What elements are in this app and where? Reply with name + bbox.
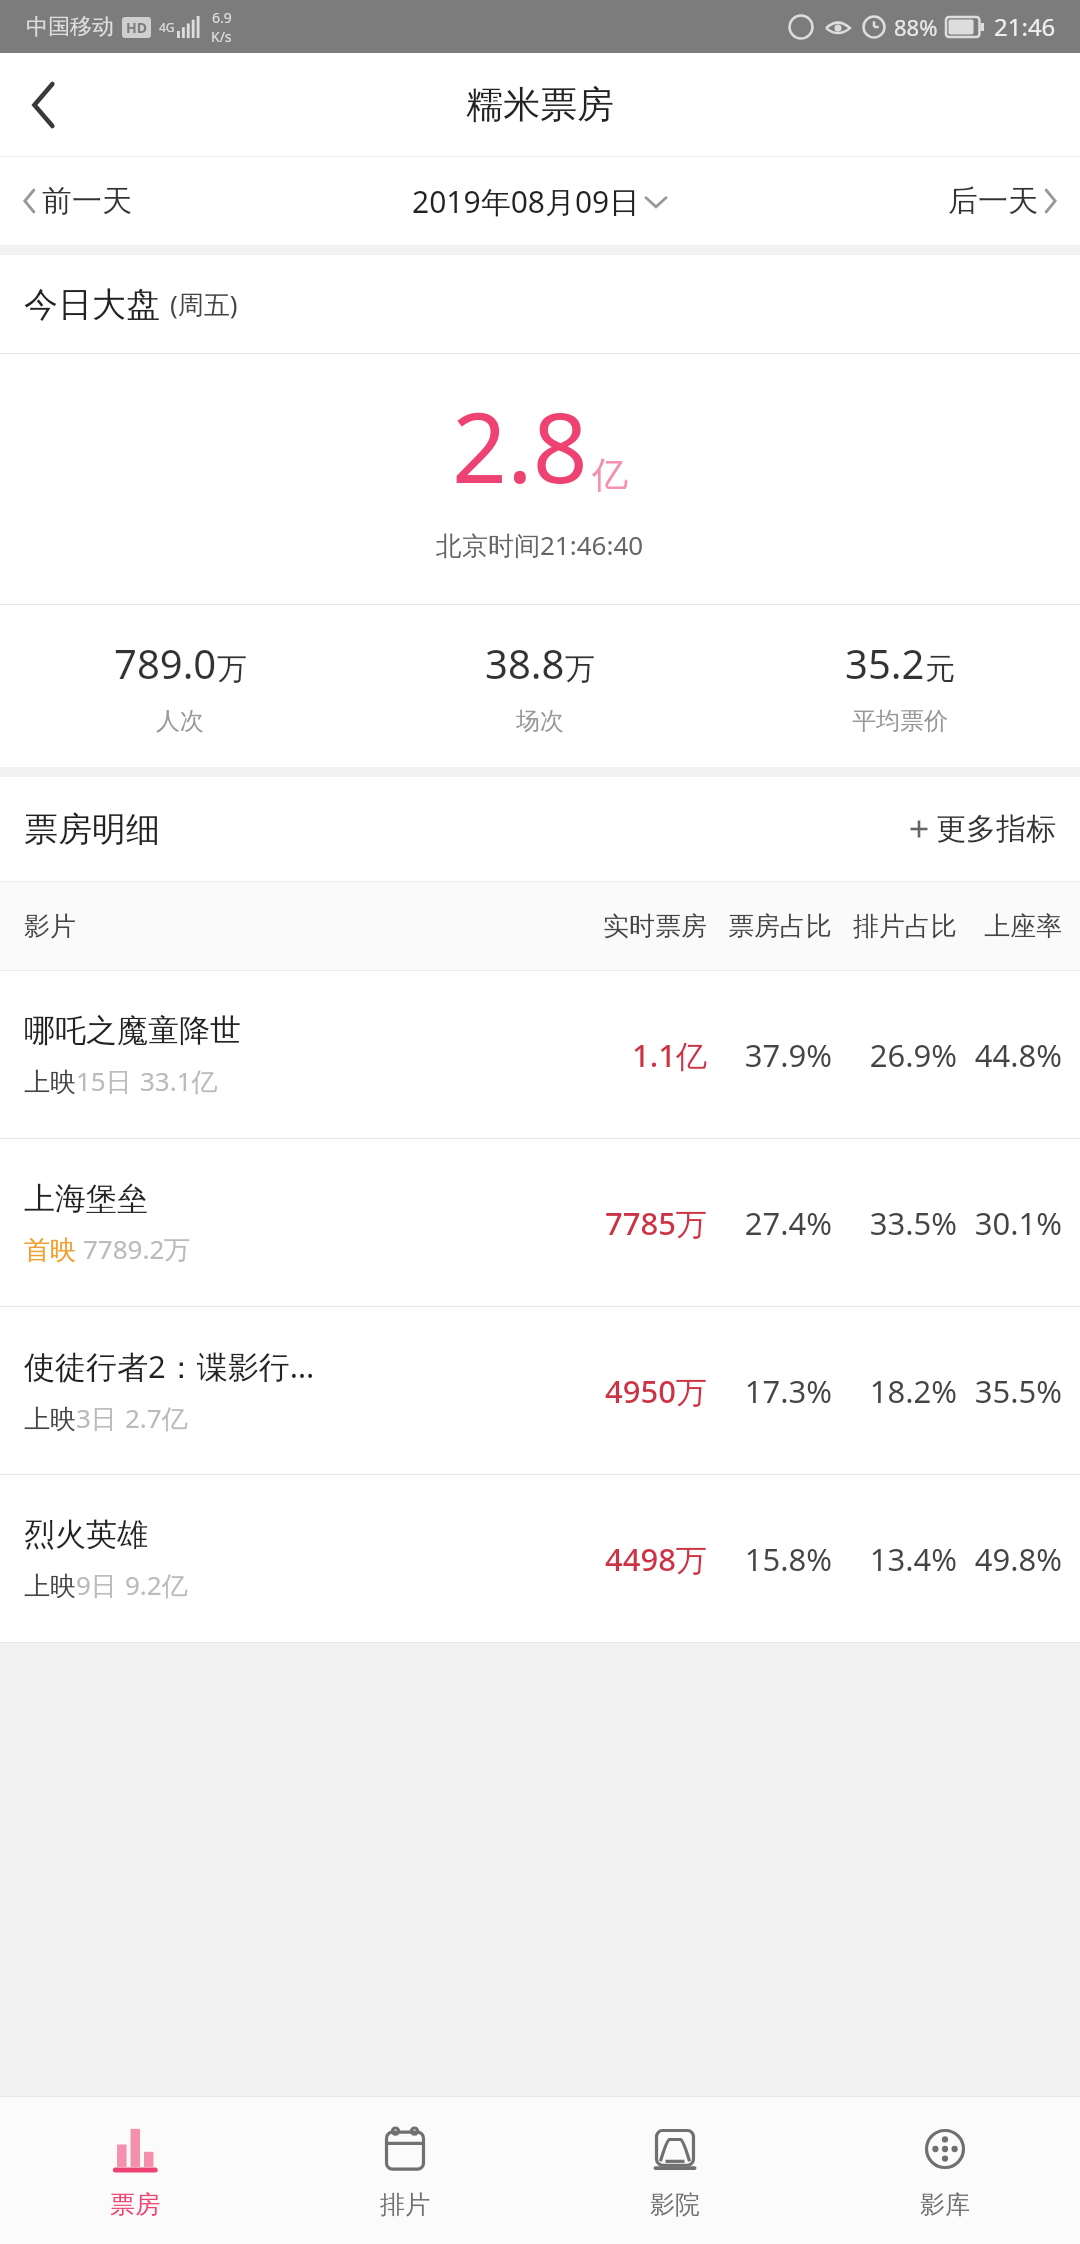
staticText: 27.4%: [707, 1202, 832, 1244]
staticText: 上海堡垒: [24, 1179, 148, 1218]
button[interactable]: 使徒行者2：谍影行…: [0, 1307, 1080, 1474]
staticText: 9日: [76, 1567, 117, 1603]
staticText: 平均票价: [852, 706, 948, 736]
staticText: 21:46: [994, 10, 1056, 43]
staticText: 影库: [920, 2189, 970, 2220]
staticText: 4950万: [557, 1370, 707, 1412]
staticText: 票房明细: [24, 808, 160, 851]
button[interactable]: 影库: [810, 2097, 1080, 2244]
staticText: 789.0: [114, 636, 217, 690]
staticText: 49.8%: [957, 1538, 1062, 1580]
staticText: 烈火英雄: [24, 1515, 148, 1554]
staticText: 元: [925, 650, 955, 688]
staticText: 9.2亿: [125, 1567, 188, 1603]
staticText: 2019年08月09日: [412, 181, 640, 222]
button[interactable]: 哪吒之魔童降世: [0, 971, 1080, 1138]
button[interactable]: 返回: [0, 61, 88, 149]
staticText: 6.9: [212, 8, 232, 27]
staticText: 7789.2万: [83, 1231, 191, 1267]
staticText: K/s: [211, 27, 232, 46]
button[interactable]: 789.0: [0, 605, 360, 767]
staticText: 排片占比: [832, 910, 957, 943]
button[interactable]: 2019年08月09日: [412, 181, 667, 222]
staticText: 26.9%: [832, 1034, 957, 1076]
staticText: 中国移动: [26, 13, 114, 41]
button[interactable]: 更多指标: [906, 810, 1056, 848]
staticText: 票房占比: [707, 910, 832, 943]
staticText: 上座率: [957, 910, 1062, 943]
staticText: 18.2%: [832, 1370, 957, 1412]
staticText: 使徒行者2：谍影行…: [24, 1345, 315, 1387]
staticText: 13.4%: [832, 1538, 957, 1580]
button[interactable]: 38.8: [360, 605, 720, 767]
staticText: 3日: [76, 1400, 117, 1436]
button[interactable]: 前一天: [22, 182, 132, 220]
staticText: 上映: [24, 1066, 76, 1099]
button[interactable]: 烈火英雄: [0, 1475, 1080, 1642]
staticText: 2.7亿: [125, 1400, 188, 1436]
staticText: 实时票房: [557, 910, 707, 943]
staticText: 2.8: [452, 380, 588, 511]
staticText: 哪吒之魔童降世: [24, 1011, 241, 1050]
staticText: 38.8: [485, 636, 565, 690]
staticText: 15.8%: [707, 1538, 832, 1580]
staticText: 88%: [894, 12, 938, 42]
staticText: 4498万: [557, 1538, 707, 1580]
staticText: 更多指标: [936, 810, 1056, 848]
button[interactable]: 上海堡垒: [0, 1139, 1080, 1306]
staticText: 44.8%: [957, 1034, 1062, 1076]
staticText: 万: [565, 650, 595, 688]
staticText: HD: [126, 18, 147, 37]
staticText: 33.1亿: [140, 1063, 218, 1099]
staticText: 万: [217, 650, 247, 688]
button[interactable]: 35.2: [720, 605, 1080, 767]
button[interactable]: 后一天: [948, 182, 1058, 220]
staticText: 35.2: [845, 636, 925, 690]
button[interactable]: 排片: [270, 2097, 540, 2244]
staticText: 北京时间21:46:40: [436, 527, 644, 563]
staticText: 7785万: [557, 1202, 707, 1244]
staticText: 人次: [156, 706, 204, 736]
staticText: 1.1亿: [557, 1034, 707, 1076]
staticText: 上映: [24, 1570, 76, 1603]
staticText: 17.3%: [707, 1370, 832, 1412]
button[interactable]: 影院: [540, 2097, 810, 2244]
staticText: (周五): [170, 286, 238, 322]
staticText: 前一天: [42, 182, 132, 220]
staticText: 35.5%: [957, 1370, 1062, 1412]
staticText: 上映: [24, 1403, 76, 1436]
staticText: 37.9%: [707, 1034, 832, 1076]
staticText: 影片: [24, 910, 557, 943]
staticText: 15日: [76, 1063, 132, 1099]
staticText: 票房: [110, 2189, 160, 2220]
staticText: 排片: [380, 2189, 430, 2220]
button[interactable]: 票房: [0, 2097, 270, 2244]
staticText: 场次: [516, 706, 564, 736]
staticText: 亿: [592, 452, 628, 497]
staticText: 4G: [159, 19, 175, 35]
staticText: 影院: [650, 2189, 700, 2220]
staticText: 后一天: [948, 182, 1038, 220]
staticText: 首映: [24, 1234, 76, 1267]
staticText: 33.5%: [832, 1202, 957, 1244]
staticText: 今日大盘: [24, 283, 160, 326]
staticText: 30.1%: [957, 1202, 1062, 1244]
staticText: 糯米票房: [466, 81, 614, 128]
